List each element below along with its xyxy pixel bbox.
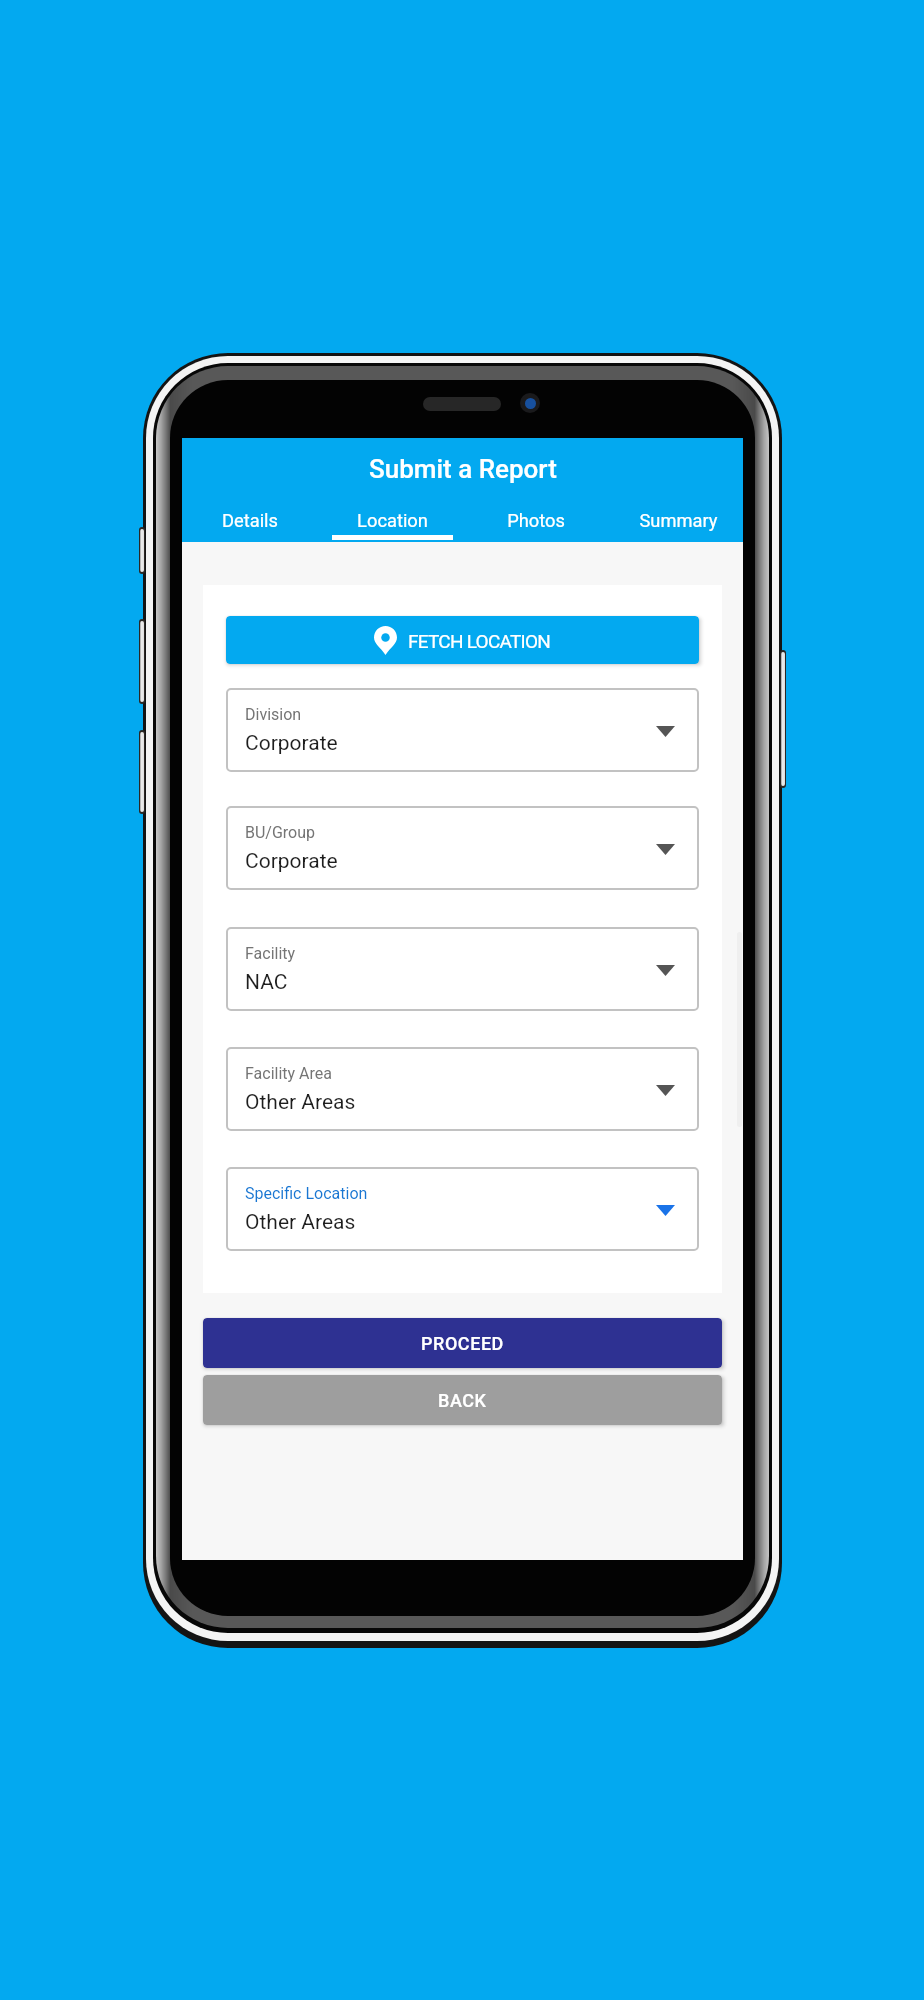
staticText: Facility Area [245, 1064, 332, 1083]
button[interactable]: Facility [226, 927, 699, 1011]
staticText: Photos [507, 510, 565, 531]
staticText: Summary [639, 510, 718, 531]
staticText: Other Areas [245, 1090, 356, 1115]
staticText: Specific Location [245, 1184, 368, 1203]
staticText: Other Areas [245, 1210, 356, 1235]
button[interactable]: PROCEED [203, 1318, 722, 1368]
staticText: NAC [245, 970, 288, 995]
button[interactable]: Location [321, 496, 464, 542]
staticText: Submit a Report [369, 454, 557, 484]
button[interactable]: Division [226, 688, 699, 772]
staticText: PROCEED [421, 1333, 504, 1354]
button[interactable]: BACK [203, 1375, 722, 1425]
staticText: Details [222, 510, 278, 531]
button[interactable]: Facility Area [226, 1047, 699, 1131]
button[interactable]: Details [179, 496, 321, 542]
staticText: Corporate [245, 731, 338, 756]
staticText: BU/Group [245, 823, 316, 842]
button[interactable]: Photos [464, 496, 607, 542]
staticText: Division [245, 705, 302, 724]
button[interactable]: Specific Location [226, 1167, 699, 1251]
staticText: FETCH LOCATION [408, 630, 551, 652]
button[interactable]: Summary [607, 496, 750, 542]
staticText: Facility [245, 944, 296, 963]
staticText: Location [357, 510, 428, 531]
button[interactable]: FETCH LOCATION [226, 616, 699, 664]
button[interactable]: BU/Group [226, 806, 699, 890]
staticText: Corporate [245, 849, 338, 874]
staticText: BACK [438, 1390, 487, 1411]
